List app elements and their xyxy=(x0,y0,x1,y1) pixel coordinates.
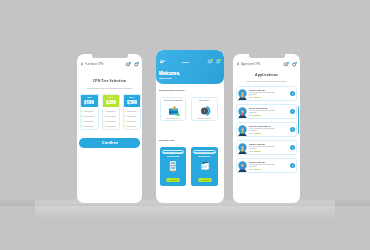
button[interactable]: Mark Wahlberg xyxy=(236,104,297,119)
staticText: Feature item xyxy=(84,115,94,117)
button[interactable]: Premium Business Profile xyxy=(191,147,218,186)
staticText: Feature item xyxy=(106,120,116,122)
staticText: successfully. xyxy=(249,112,257,114)
staticText: Approved xyxy=(254,169,261,171)
staticText: Recommended Options xyxy=(159,89,185,92)
staticText: Mark Wahlberg xyxy=(249,106,268,109)
staticText: Feature item xyxy=(106,125,116,127)
staticText: Here is the list of completed applicatio… xyxy=(233,80,300,83)
staticText: Your CPN application has been approved xyxy=(249,128,275,130)
staticText: Feature item xyxy=(84,120,94,122)
button[interactable]: TIER 1 xyxy=(80,94,99,130)
staticText: $399 xyxy=(127,99,138,105)
staticText: Feature item xyxy=(84,125,94,127)
staticText: David Warner xyxy=(249,160,266,163)
button[interactable]: Notifications xyxy=(133,61,139,67)
button[interactable]: David Warner xyxy=(236,86,297,101)
staticText: Lorem ipsum dolor xyxy=(167,156,180,158)
staticText: successfully. xyxy=(249,130,257,132)
staticText: TIER 3 xyxy=(129,96,135,98)
button[interactable]: Open application xyxy=(290,163,295,168)
button[interactable]: Open application xyxy=(290,91,295,96)
staticText: Confirm xyxy=(102,140,118,146)
staticText: Home xyxy=(182,60,190,63)
staticText: successfully. xyxy=(249,94,257,96)
staticText: Great Name xyxy=(159,77,172,80)
button[interactable]: Approved CPN xyxy=(236,62,260,66)
staticText: Approved xyxy=(254,151,261,153)
button[interactable]: Confirm xyxy=(79,138,140,148)
button[interactable]: Notifications xyxy=(291,61,297,67)
button[interactable]: TIER 3 xyxy=(123,94,141,130)
button[interactable]: Notifications xyxy=(215,58,221,64)
staticText: Applications xyxy=(233,72,300,77)
staticText: Lorem ipsum dolor sit xyxy=(197,118,212,120)
button[interactable]: Credit Building Services xyxy=(160,147,186,186)
staticText: Status: xyxy=(249,151,254,153)
staticText: TIER 1 xyxy=(87,96,93,98)
staticText: CPN Select xyxy=(199,99,210,102)
button[interactable]: TIER 2 xyxy=(102,94,120,130)
staticText: successfully. xyxy=(249,166,257,168)
button[interactable]: Open application xyxy=(290,127,295,132)
staticText: Feature item xyxy=(127,115,137,117)
staticText: Feature item xyxy=(127,120,137,122)
button[interactable]: Daniel Newington xyxy=(236,122,297,137)
staticText: Approved xyxy=(254,115,261,117)
staticText: Approved xyxy=(254,133,261,135)
button[interactable]: Purchase CPN xyxy=(80,62,104,66)
staticText: Credit Building Services xyxy=(163,151,183,153)
staticText: Your CPN application has been approved xyxy=(249,92,275,94)
staticText: Approved xyxy=(254,97,261,99)
button[interactable]: Messages xyxy=(125,61,131,67)
staticText: Your CPN application has been approved xyxy=(249,110,275,112)
staticText: Feature item xyxy=(127,125,137,127)
staticText: Status: xyxy=(249,97,254,99)
staticText: Premium Plan xyxy=(159,139,175,142)
staticText: Status: xyxy=(249,115,254,117)
button[interactable]: David Warner xyxy=(236,140,297,155)
button[interactable]: Learn More xyxy=(198,178,212,182)
staticText: Premium Business Profile xyxy=(194,151,216,153)
button[interactable]: Learn More xyxy=(166,178,180,182)
staticText: Welcome, xyxy=(159,70,181,76)
staticText: Status: xyxy=(249,169,254,171)
staticText: $199 xyxy=(84,99,95,105)
staticText: Purchase Tradeline xyxy=(164,99,183,102)
staticText: Feature item xyxy=(106,115,116,117)
staticText: Daniel Newington xyxy=(249,124,271,127)
staticText: Feature item xyxy=(84,110,94,112)
staticText: successfully. xyxy=(249,148,257,150)
staticText: Purchase CPN xyxy=(85,62,104,66)
staticText: Approved CPN xyxy=(241,62,260,66)
button[interactable]: Messages xyxy=(283,61,289,67)
staticText: Feature item xyxy=(106,110,116,112)
staticText: Lorem ipsum dolor sit xyxy=(166,118,181,120)
staticText: Please select from the available options… xyxy=(77,87,142,90)
staticText: Your CPN application has been approved xyxy=(249,146,275,148)
button[interactable]: David Warner xyxy=(236,158,297,173)
button[interactable]: CPN Select xyxy=(191,97,218,121)
staticText: Feature item xyxy=(127,110,137,112)
button[interactable]: Menu xyxy=(159,58,165,64)
staticText: CPN Tier Selection xyxy=(77,78,142,83)
button[interactable]: Open application xyxy=(290,145,295,150)
staticText: Learn More xyxy=(201,179,210,181)
staticText: Lorem ipsum dolor xyxy=(198,156,211,158)
staticText: TIER 2 xyxy=(108,96,114,98)
staticText: $299 xyxy=(106,99,117,105)
staticText: Learn More xyxy=(169,179,178,181)
staticText: David Warner xyxy=(249,142,266,145)
button[interactable]: Purchase Tradeline xyxy=(160,97,186,121)
button[interactable]: Open application xyxy=(290,109,295,114)
staticText: David Warner xyxy=(249,88,266,91)
staticText: Your CPN application has been approved xyxy=(249,164,275,166)
button[interactable]: Messages xyxy=(207,58,213,64)
staticText: Status: xyxy=(249,133,254,135)
